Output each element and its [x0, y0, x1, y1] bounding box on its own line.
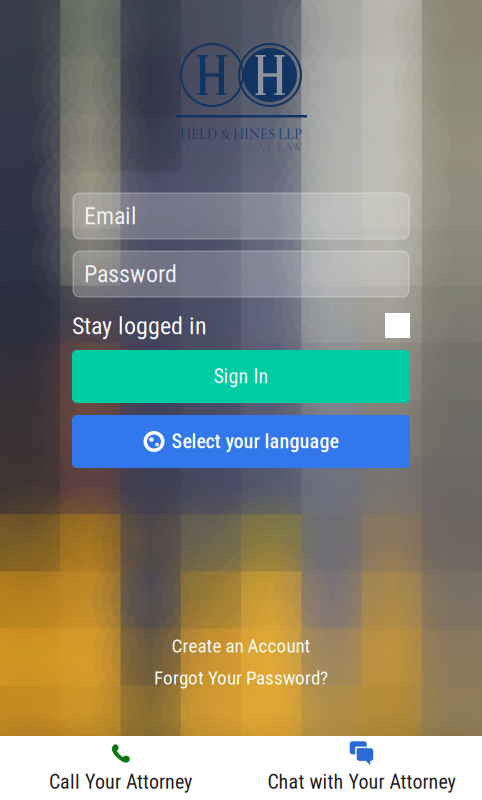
- button[interactable]: Email: [73, 193, 409, 239]
- staticText: Email: [84, 202, 137, 230]
- button[interactable]: Password: [73, 251, 409, 297]
- staticText: Create an Account: [171, 635, 310, 657]
- staticText: ATTORNEYS AT LAW: [179, 140, 302, 154]
- button[interactable]: Create an Account: [0, 633, 482, 659]
- staticText: HELD & HINES LLP: [180, 125, 302, 143]
- staticText: Call Your Attorney: [49, 770, 192, 794]
- button[interactable]: Select your language: [72, 415, 410, 468]
- button[interactable]: Sign In: [72, 350, 410, 403]
- staticText: Forgot Your Password?: [154, 667, 328, 689]
- button[interactable]: Forgot Your Password?: [0, 665, 482, 691]
- staticText: Select your language: [171, 430, 338, 453]
- button[interactable]: Chat with Your Attorney: [241, 736, 482, 800]
- staticText: Chat with Your Attorney: [267, 770, 455, 794]
- button[interactable]: Call Your Attorney: [0, 736, 241, 800]
- staticText: Sign In: [213, 365, 268, 388]
- staticText: Password: [84, 260, 177, 288]
- staticText: Stay logged in: [72, 312, 207, 340]
